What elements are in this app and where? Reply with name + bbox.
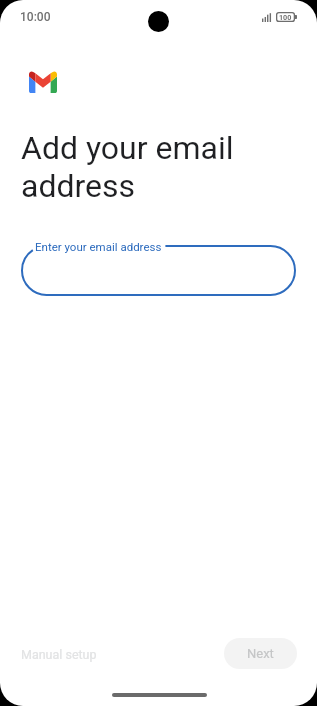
button[interactable]: Enter your email address: [21, 245, 296, 296]
staticText: 10:00: [20, 10, 51, 24]
other: Gmail: [29, 72, 57, 93]
staticText: Manual setup: [21, 647, 97, 662]
staticText: Enter your email address: [35, 240, 162, 253]
button[interactable]: Manual setup: [9, 639, 109, 670]
staticText: Add your email address: [21, 129, 234, 205]
staticText: Next: [247, 646, 274, 661]
button[interactable]: Next: [224, 638, 297, 669]
staticText: 100: [279, 13, 292, 21]
